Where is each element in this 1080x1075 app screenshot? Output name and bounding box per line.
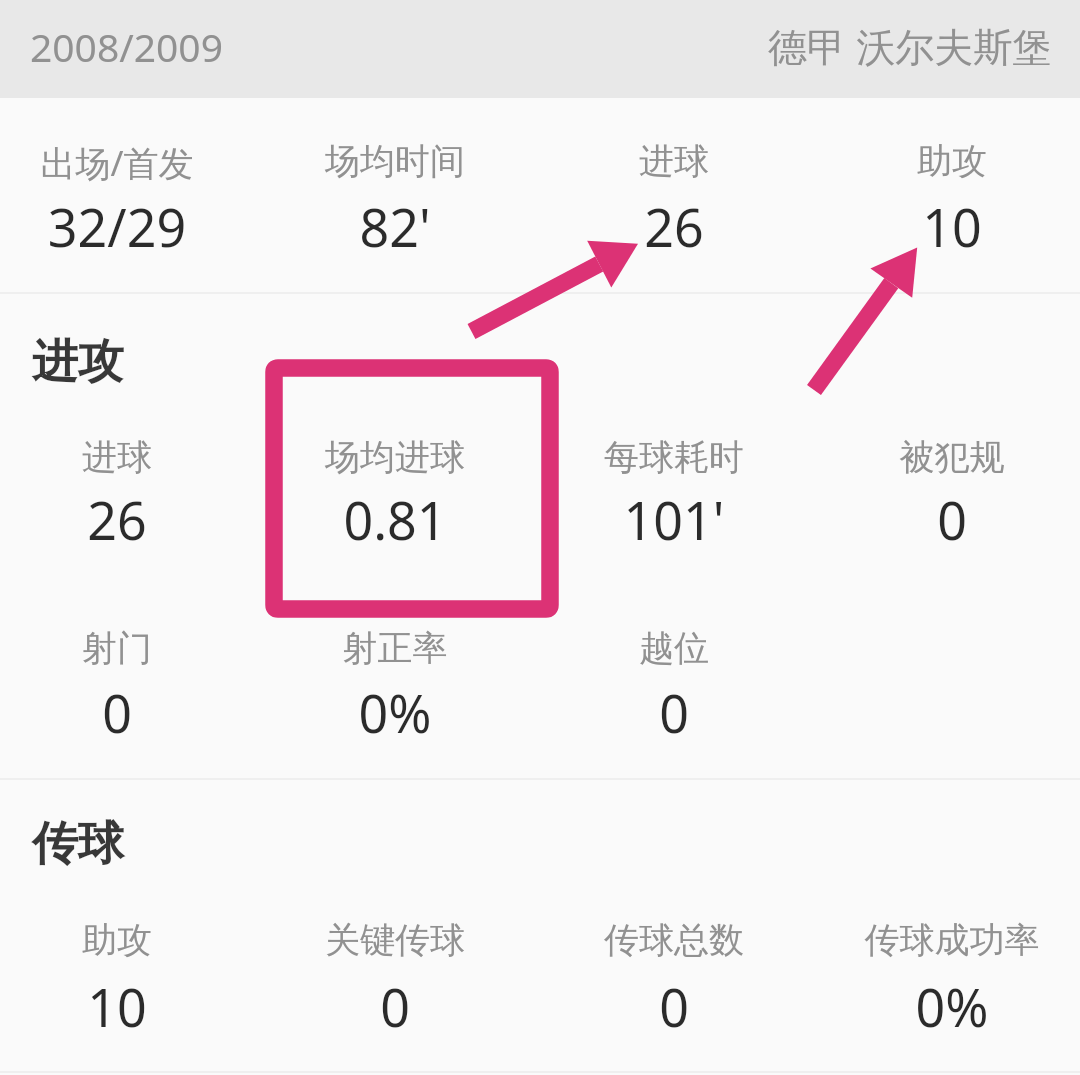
button[interactable]: 进球 <box>535 139 813 252</box>
staticText: 2008/2009 <box>30 20 223 73</box>
staticText: 0 <box>535 677 813 748</box>
staticText: 0 <box>535 971 813 1042</box>
button[interactable]: 2008/2009 <box>0 0 1080 98</box>
staticText: 101' <box>535 484 813 555</box>
button[interactable]: 射正率 <box>256 626 534 738</box>
staticText: 越位 <box>535 626 813 670</box>
staticText: 0.81 <box>256 484 534 555</box>
button[interactable]: 进球 <box>0 435 256 545</box>
button[interactable]: 场均时间 <box>256 139 534 252</box>
button[interactable]: 助攻 <box>813 139 1080 252</box>
staticText: 32/29 <box>0 191 256 262</box>
staticText: 被犯规 <box>813 435 1080 479</box>
staticText: 0 <box>256 971 534 1042</box>
staticText: 出场/首发 <box>0 139 256 187</box>
staticText: 82' <box>256 191 534 262</box>
staticText: 传球总数 <box>535 918 813 962</box>
staticText: 助攻 <box>0 918 256 962</box>
staticText: 每球耗时 <box>535 435 813 479</box>
button[interactable]: 被犯规 <box>813 435 1080 545</box>
staticText: 0% <box>256 677 534 748</box>
button[interactable]: 进攻 <box>32 333 124 391</box>
staticText: 10 <box>0 971 256 1042</box>
staticText: 进球 <box>0 435 256 479</box>
staticText: 0 <box>813 484 1080 555</box>
staticText: 射正率 <box>256 626 534 670</box>
button[interactable]: 助攻 <box>0 918 256 1032</box>
staticText: 0% <box>813 971 1080 1042</box>
staticText: 进攻 <box>32 333 124 391</box>
staticText: 德甲 沃尔夫斯堡 <box>768 19 1052 72</box>
button[interactable]: 传球成功率 <box>813 918 1080 1032</box>
staticText: 场均时间 <box>256 139 534 183</box>
staticText: 10 <box>813 191 1080 262</box>
button[interactable]: 关键传球 <box>256 918 534 1032</box>
staticText: 26 <box>535 191 813 262</box>
staticText: 传球成功率 <box>813 918 1080 962</box>
staticText: 进球 <box>535 139 813 183</box>
staticText: 助攻 <box>813 139 1080 183</box>
staticText: 场均进球 <box>256 435 534 479</box>
button[interactable]: 越位 <box>535 626 813 738</box>
button[interactable]: 场均进球 <box>256 435 534 545</box>
button[interactable]: 射门 <box>0 626 256 738</box>
button[interactable]: 传球总数 <box>535 918 813 1032</box>
staticText: 传球 <box>32 815 124 873</box>
staticText: 关键传球 <box>256 918 534 962</box>
button[interactable]: 传球 <box>32 815 124 873</box>
staticText: 0 <box>0 677 256 748</box>
other: Highlighted goals-per-game statistic <box>0 0 1080 1075</box>
button[interactable]: 出场/首发 <box>0 139 256 252</box>
button[interactable]: 每球耗时 <box>535 435 813 545</box>
staticText: 26 <box>0 484 256 555</box>
staticText: 射门 <box>0 626 256 670</box>
